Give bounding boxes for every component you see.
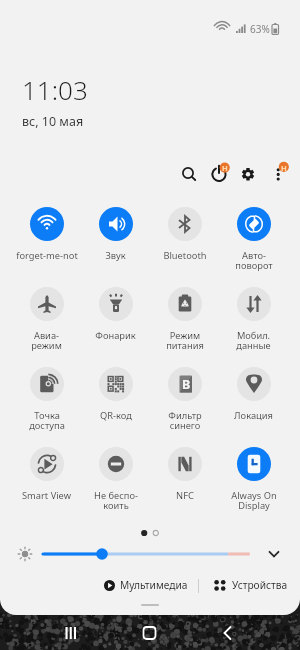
staticText: 63%: [250, 22, 270, 36]
button[interactable]: Expand brightness: [262, 544, 286, 568]
staticText: Bluetooth: [163, 249, 207, 262]
staticText: Точка доступа: [29, 409, 65, 432]
button[interactable]: Мультимедиа: [104, 577, 188, 593]
staticText: forget-me-not: [16, 249, 78, 262]
button[interactable]: Home: [134, 618, 166, 650]
button[interactable]: Мобил. данные: [219, 287, 288, 367]
staticText: Локация: [234, 409, 273, 422]
staticText: вс, 10 мая: [22, 113, 84, 130]
staticText: Устройства: [232, 578, 288, 592]
staticText: Авто- поворот: [235, 249, 273, 272]
staticText: H: [281, 163, 287, 173]
staticText: Не беспо- коить: [94, 489, 138, 512]
button[interactable]: Search: [174, 159, 202, 187]
button[interactable]: Режим питания: [150, 287, 219, 367]
button[interactable]: Авиа- режим: [12, 287, 81, 367]
button[interactable]: Power: [205, 160, 233, 188]
button[interactable]: Не беспо- коить: [81, 447, 150, 527]
staticText: Мобил. данные: [236, 329, 271, 352]
button[interactable]: Точка доступа: [12, 367, 81, 447]
button[interactable]: Локация: [219, 367, 288, 447]
staticText: Фонарик: [95, 329, 136, 342]
button[interactable]: Back: [212, 618, 244, 650]
staticText: 11:03: [22, 72, 88, 107]
button[interactable]: Звук: [81, 207, 150, 287]
button[interactable]: Settings: [234, 160, 262, 188]
button[interactable]: B: [150, 367, 219, 447]
button[interactable]: forget-me-not: [12, 207, 81, 287]
button[interactable]: Recent apps: [55, 618, 87, 650]
button[interactable]: More options: [264, 160, 292, 188]
staticText: NFC: [176, 489, 194, 502]
button[interactable]: NFC: [150, 447, 219, 527]
staticText: B: [182, 376, 191, 393]
staticText: Мультимедиа: [120, 578, 188, 592]
staticText: Smart View: [22, 489, 71, 502]
staticText: QR-код: [100, 409, 132, 422]
staticText: Авиа- режим: [31, 329, 62, 352]
staticText: Фильтр синего: [168, 409, 202, 432]
button[interactable]: Bluetooth: [150, 207, 219, 287]
button[interactable]: Smart View: [12, 447, 81, 527]
button[interactable]: Фонарик: [81, 287, 150, 367]
button[interactable]: Always On Display: [219, 447, 288, 527]
button[interactable]: QR-код: [81, 367, 150, 447]
staticText: Режим питания: [166, 329, 204, 352]
staticText: H: [222, 163, 228, 173]
button[interactable]: Авто- поворот: [219, 207, 288, 287]
staticText: Always On Display: [231, 489, 277, 512]
button[interactable]: Устройства: [214, 577, 288, 593]
staticText: Звук: [105, 249, 126, 262]
